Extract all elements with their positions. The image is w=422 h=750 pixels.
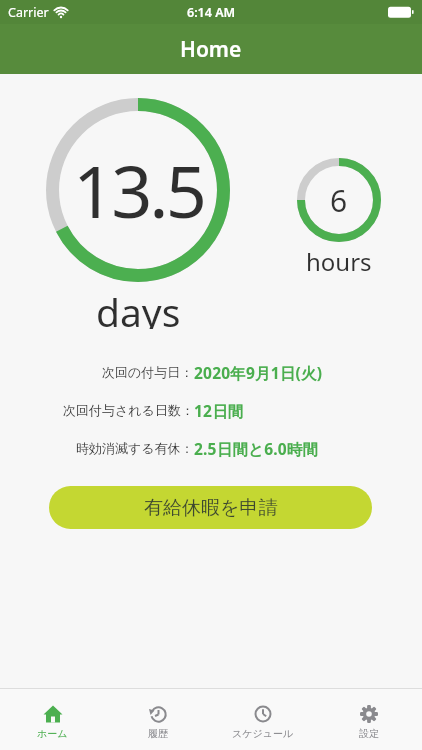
staticText: 2.5日間と6.0時間 [194,438,319,459]
staticText: 履歴 [148,727,168,740]
staticText: 設定 [359,727,379,740]
staticText: hours [306,245,372,273]
button[interactable]: 設定 [316,689,422,750]
button[interactable]: 履歴 [105,689,210,750]
staticText: 時効消滅する有休： [76,440,194,456]
staticText: 13.5 [73,141,204,239]
staticText: 6:14 AM [187,4,236,21]
staticText: 12日間 [194,400,244,421]
staticText: Carrier [8,4,49,21]
button[interactable]: ホーム [0,689,105,750]
staticText: 6 [330,180,348,221]
staticText: スケジュール [232,727,294,740]
staticText: 有給休暇を申請 [144,496,278,520]
staticText: 2020年9月1日(火) [194,362,323,383]
button[interactable]: 有給休暇を申請 [49,486,372,529]
button[interactable]: スケジュール [210,689,316,750]
staticText: 次回の付与日： [102,364,194,380]
staticText: days [96,285,181,329]
staticText: ホーム [37,727,68,740]
staticText: Home [180,35,242,64]
staticText: 次回付与される日数： [63,402,194,418]
